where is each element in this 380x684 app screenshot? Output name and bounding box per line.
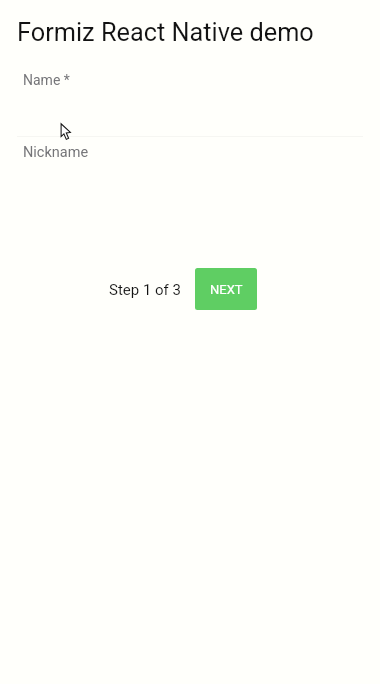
button[interactable]: Nickname text field: [16, 138, 364, 184]
staticText: Step 1 of 3: [109, 281, 181, 299]
button[interactable]: Name, required, text field: [16, 64, 364, 132]
staticText: Formiz React Native demo: [17, 18, 314, 48]
button[interactable]: NEXT: [195, 268, 257, 310]
staticText: Nickname: [23, 144, 89, 161]
staticText: Name *: [23, 72, 70, 88]
staticText: NEXT: [210, 282, 243, 297]
